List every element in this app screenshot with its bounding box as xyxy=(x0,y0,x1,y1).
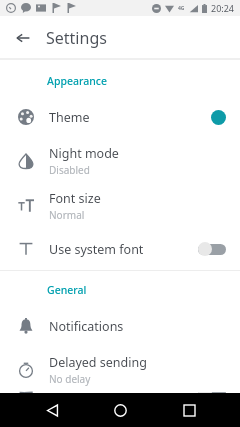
staticText: Notifications xyxy=(49,318,124,335)
button[interactable]: Back xyxy=(8,23,38,53)
staticText: Appearance xyxy=(47,74,107,88)
staticText: Font size xyxy=(49,190,101,207)
staticText: 4G xyxy=(178,5,185,12)
staticText: 20:24 xyxy=(211,2,235,14)
staticText: Theme xyxy=(49,109,90,126)
button[interactable]: Recents xyxy=(172,393,206,427)
button[interactable]: Back xyxy=(35,393,69,427)
button[interactable]: Font size xyxy=(0,183,240,228)
button[interactable]: Use system font xyxy=(0,228,240,270)
staticText: Delayed sending xyxy=(49,354,147,371)
button[interactable]: Notifications xyxy=(0,305,240,347)
button[interactable]: Night mode xyxy=(0,138,240,183)
button[interactable]: Toggle xyxy=(198,392,226,393)
button[interactable]: Delivery confirmations xyxy=(0,392,240,393)
staticText: Disabled xyxy=(49,163,90,177)
button[interactable]: Toggle xyxy=(198,242,226,256)
staticText: Use system font xyxy=(49,241,144,258)
staticText: Settings xyxy=(46,27,107,49)
staticText: Night mode xyxy=(49,145,119,162)
staticText: General xyxy=(47,283,87,297)
staticText: No delay xyxy=(49,372,91,386)
button[interactable]: Home xyxy=(103,393,137,427)
button[interactable]: Theme xyxy=(0,96,240,138)
button[interactable]: Delayed sending xyxy=(0,347,240,392)
staticText: Normal xyxy=(49,208,85,222)
